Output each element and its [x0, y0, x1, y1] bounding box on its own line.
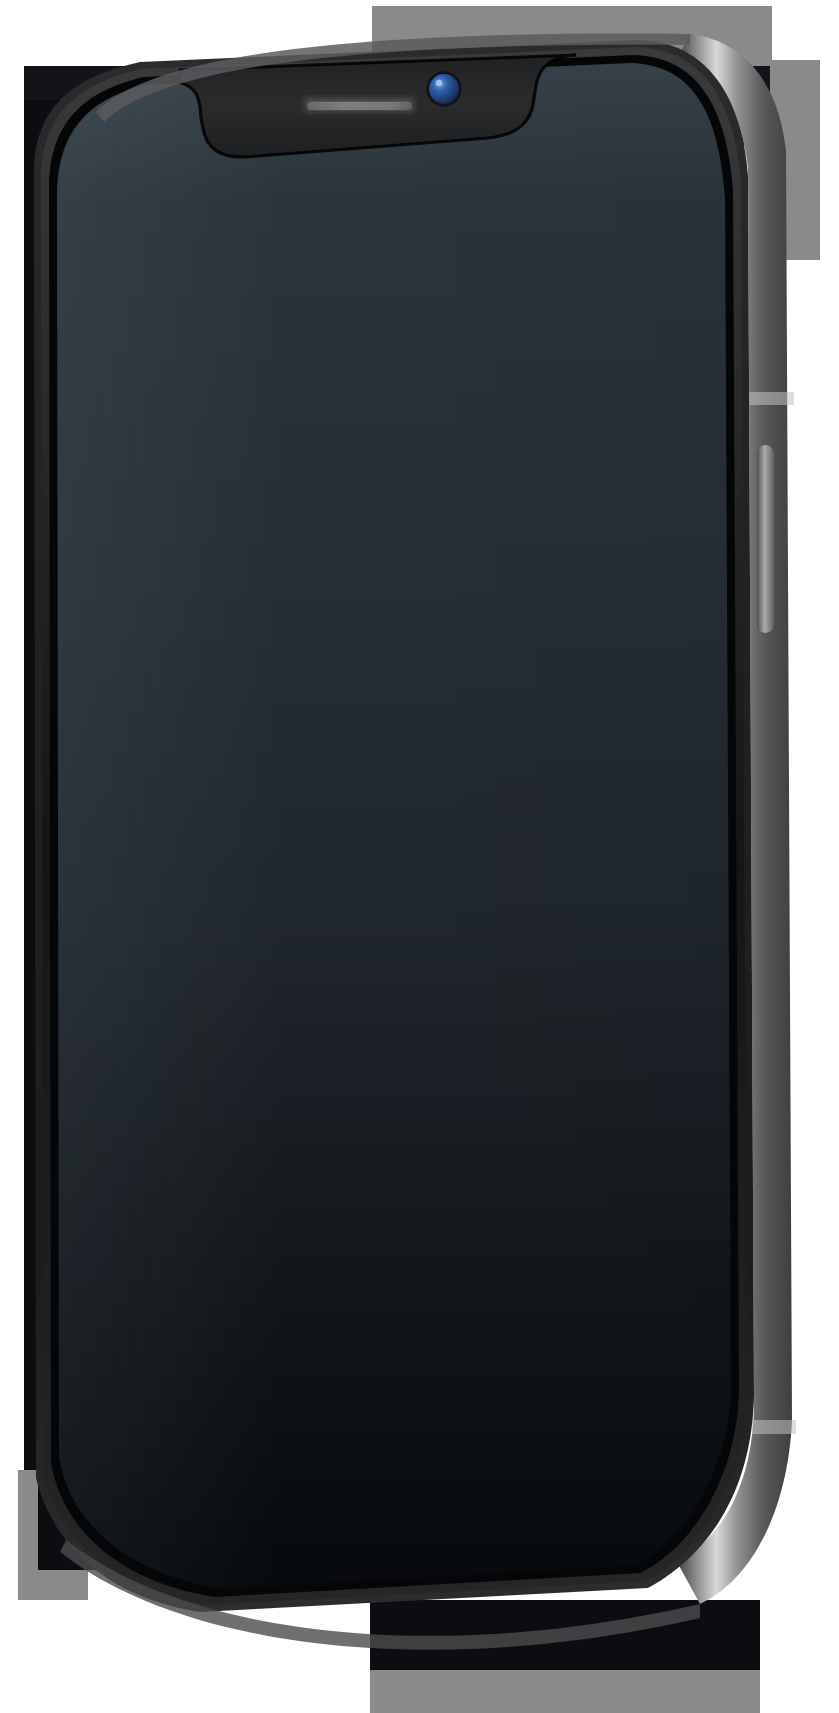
button[interactable]: Phone device mockup, screen off: [0, 0, 839, 1713]
